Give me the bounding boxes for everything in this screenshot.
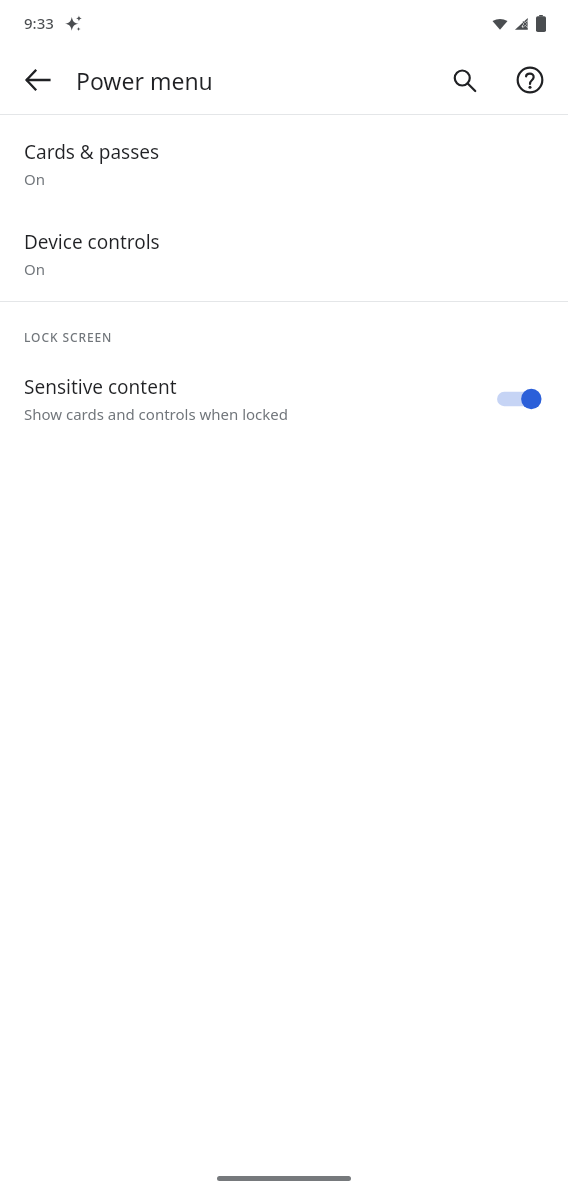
button[interactable]: Search [440,56,488,104]
staticText: On [24,259,45,279]
staticText: Cards & passes [24,139,160,165]
staticText: 9:33 [24,13,54,33]
button[interactable]: Sensitive content toggle [496,382,548,416]
button[interactable]: Help [506,56,554,104]
staticText: LOCK SCREEN [24,329,113,345]
staticText: Show cards and controls when locked [24,404,289,424]
staticText: Device controls [24,229,160,255]
button[interactable]: Device controls [0,227,568,281]
button[interactable]: Back [14,56,62,104]
button[interactable]: Cards & passes [0,137,568,191]
staticText: Power menu [76,65,213,96]
button[interactable]: Sensitive content [0,374,568,424]
staticText: On [24,169,45,189]
staticText: Sensitive content [24,374,177,400]
